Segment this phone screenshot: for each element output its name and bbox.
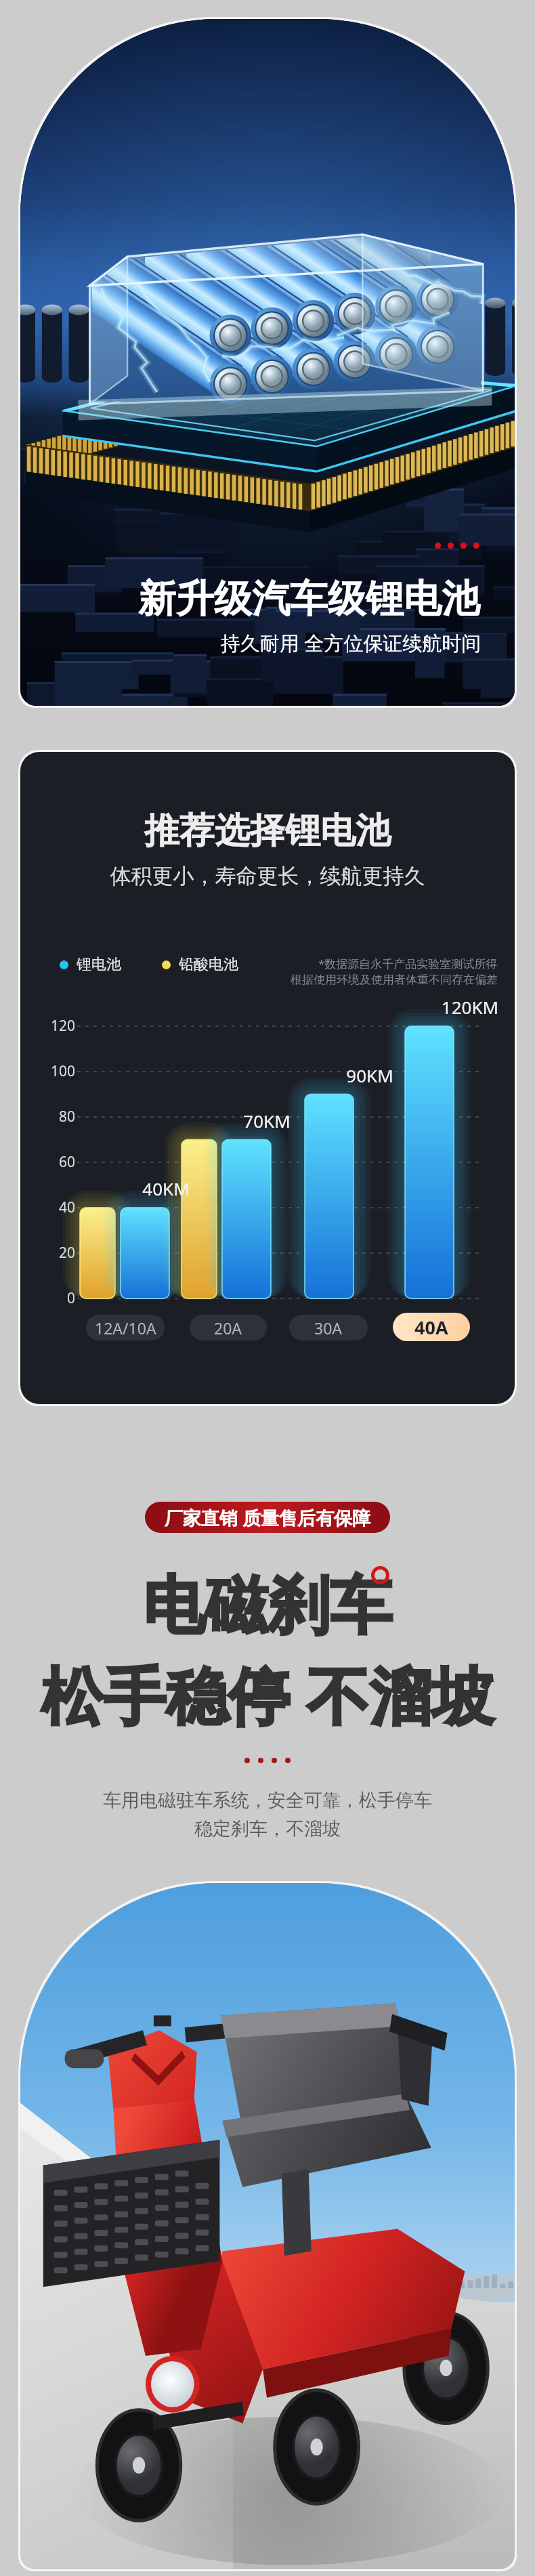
button[interactable]: 12A/10A [86, 1315, 165, 1340]
staticText: 40KM [125, 1177, 207, 1200]
staticText: 120 [20, 1016, 75, 1036]
staticText: 体积更小，寿命更长，续航更持久 [20, 863, 515, 889]
staticText: 稳定刹车，不溜坡 [194, 1817, 341, 1840]
staticText: 持久耐用 全方位保证续航时间 [148, 629, 515, 656]
staticText: 20A [214, 1317, 242, 1338]
staticText: 40A [414, 1315, 448, 1340]
button[interactable]: 厂家直销 质量售后有保障 [145, 1502, 390, 1533]
staticText: 60 [20, 1152, 75, 1172]
staticText: 0 [20, 1288, 75, 1308]
staticText: 推荐选择锂电池 [20, 809, 515, 853]
staticText: 20 [20, 1243, 75, 1263]
staticText: 90KM [329, 1063, 410, 1087]
staticText: 铅酸电池 [179, 955, 238, 974]
staticText: 40 [20, 1198, 75, 1217]
staticText: 80 [20, 1107, 75, 1126]
staticText: 70KM [226, 1109, 307, 1133]
staticText: 锂电池 [77, 955, 121, 974]
staticText: 厂家直销 质量售后有保障 [165, 1505, 371, 1530]
staticText: 车用电磁驻车系统，安全可靠，松手停车 [103, 1789, 432, 1812]
staticText: 100 [20, 1061, 75, 1081]
staticText: 12A/10A [95, 1317, 156, 1338]
staticText: *数据源自永千产品实验室测试所得 [318, 956, 498, 971]
staticText: 松手稳停 不溜坡 [41, 1652, 494, 1737]
staticText: 30A [314, 1317, 343, 1338]
button[interactable]: 30A [289, 1315, 368, 1340]
button[interactable]: 40A [393, 1313, 470, 1341]
button[interactable]: 20A [190, 1315, 267, 1340]
staticText: 新升级汽车级锂电池 [106, 575, 512, 623]
staticText: 电磁刹车 [143, 1567, 392, 1645]
staticText: 根据使用环境及使用者体重不同存在偏差 [291, 973, 498, 987]
staticText: 120KM [429, 995, 511, 1019]
